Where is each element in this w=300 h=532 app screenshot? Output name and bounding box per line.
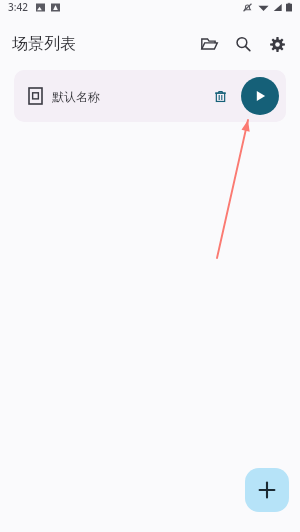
button[interactable]: Search [226, 27, 260, 61]
button[interactable]: Open folder [192, 27, 226, 61]
button[interactable]: Settings [260, 27, 294, 61]
staticText: 默认名称 [52, 89, 100, 104]
button[interactable]: Delete [205, 81, 235, 111]
staticText: 场景列表 [12, 34, 76, 54]
button[interactable]: Play scene [241, 77, 279, 115]
staticText: 3:42 [8, 0, 28, 14]
button[interactable]: Add scene [245, 468, 289, 512]
button[interactable]: 默认名称 [14, 70, 286, 122]
